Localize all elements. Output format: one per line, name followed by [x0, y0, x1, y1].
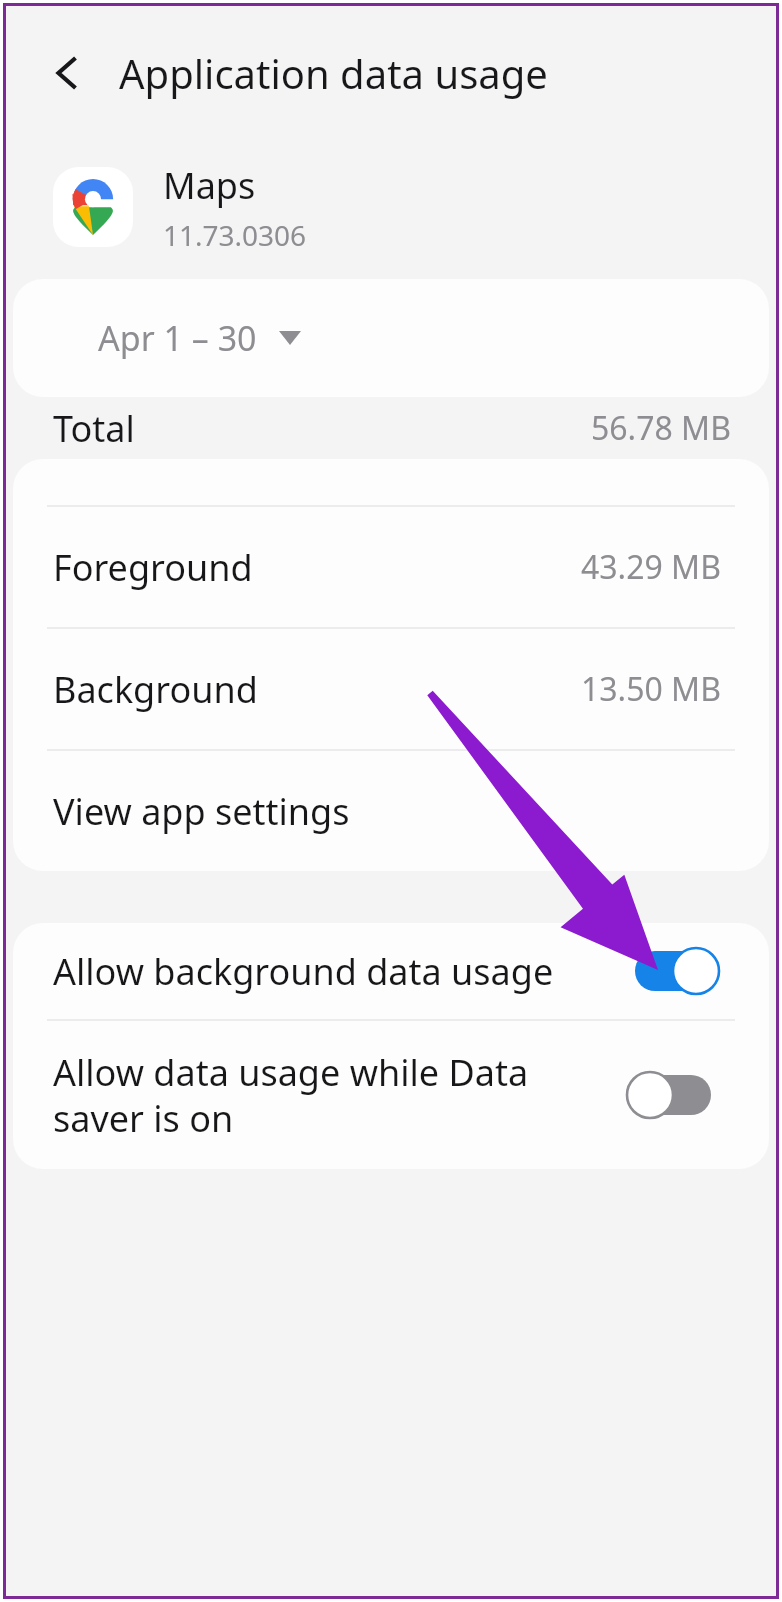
staticText: View app settings — [53, 787, 350, 836]
staticText: Maps — [163, 161, 256, 210]
staticText: 56.78 MB — [591, 406, 731, 450]
staticText: Foreground — [53, 543, 253, 592]
staticText: Apr 1 – 30 — [98, 315, 257, 361]
staticText: Application data usage — [119, 46, 548, 100]
button[interactable]: Total — [3, 397, 779, 459]
button[interactable]: Background — [13, 629, 769, 749]
button[interactable]: Apr 1 – 30 — [13, 279, 769, 397]
staticText: Background — [53, 665, 258, 714]
button[interactable]: Back — [39, 44, 97, 102]
staticText: Allow data usage while Data saver is on — [53, 1048, 553, 1143]
staticText: 11.73.0306 — [163, 216, 307, 254]
button[interactable]: Toggle on — [635, 945, 721, 997]
button[interactable]: Foreground — [13, 507, 769, 627]
staticText: Total — [53, 404, 135, 453]
button[interactable]: View app settings — [13, 751, 769, 871]
button[interactable]: Toggle off — [635, 1069, 721, 1121]
staticText: Allow background data usage — [53, 947, 554, 996]
staticText: 13.50 MB — [581, 667, 721, 711]
staticText: 43.29 MB — [581, 545, 721, 589]
button[interactable]: Allow background data usage — [13, 923, 769, 1019]
button[interactable]: Allow data usage while Data saver is on — [13, 1021, 769, 1169]
